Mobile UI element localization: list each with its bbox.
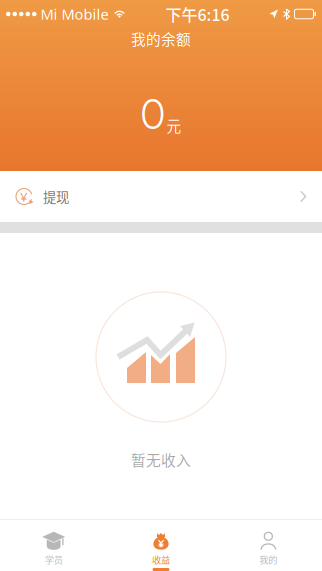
staticText: 下午6:16 <box>165 2 229 26</box>
staticText: 元 <box>166 115 181 136</box>
staticText: 学员 <box>45 553 63 566</box>
staticText: ¥ <box>20 188 28 205</box>
button[interactable]: ¥ <box>0 171 322 222</box>
staticText: Mi Mobile <box>40 4 108 24</box>
staticText: 我的 <box>259 553 277 566</box>
staticText: 收益 <box>152 553 170 566</box>
staticText: 暂无收入 <box>131 449 191 470</box>
button[interactable]: 收益 <box>107 520 215 571</box>
button[interactable]: 我的 <box>215 520 322 571</box>
staticText: 提现 <box>43 187 69 206</box>
staticText: 我的余额 <box>131 28 191 49</box>
staticText: 0 <box>140 89 165 139</box>
button[interactable]: 学员 <box>0 520 107 571</box>
